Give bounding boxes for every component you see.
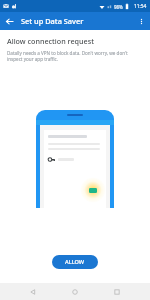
button[interactable]: Back [0,12,18,30]
staticText: Allow connection request [7,36,94,46]
button[interactable]: Back [19,283,47,300]
staticText: 98% [114,4,123,10]
button[interactable]: More options [132,12,150,30]
staticText: 11:54 [134,3,147,10]
staticText: ALLOW [65,258,85,266]
button[interactable]: ALLOW [52,255,98,269]
staticText: Set up Data Saver [21,16,84,26]
staticText: Datally needs a VPN to block data. Don't… [7,50,142,62]
button[interactable]: Recent apps [103,283,131,300]
button[interactable]: Home [61,283,89,300]
